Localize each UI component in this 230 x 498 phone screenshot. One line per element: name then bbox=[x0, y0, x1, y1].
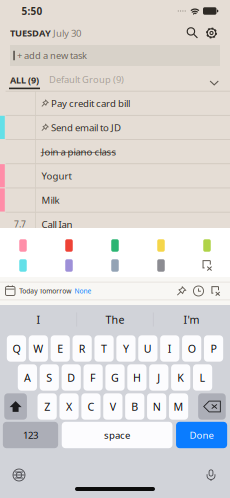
button[interactable]: O bbox=[182, 335, 201, 362]
staticText: Y bbox=[123, 341, 129, 356]
button[interactable]: I bbox=[1, 305, 76, 334]
button[interactable]: H bbox=[127, 364, 146, 391]
staticText: W bbox=[33, 341, 43, 356]
button[interactable]: Settings bbox=[202, 23, 221, 42]
staticText: O bbox=[188, 341, 196, 356]
button[interactable]: S bbox=[40, 364, 59, 391]
staticText: D bbox=[67, 370, 75, 385]
staticText: Default Group (9) bbox=[49, 73, 124, 86]
button[interactable]: Set reminder bbox=[190, 282, 207, 299]
button[interactable]: Next keyboard bbox=[9, 465, 29, 485]
button[interactable]: ALL (9) bbox=[0, 74, 40, 89]
button[interactable]: R bbox=[73, 335, 92, 362]
staticText: 5:50 bbox=[21, 4, 42, 18]
button[interactable]: Colour option bbox=[138, 237, 184, 254]
staticText: K bbox=[177, 370, 184, 385]
staticText: Pay credit card bill bbox=[51, 97, 130, 110]
button[interactable]: Colour option bbox=[184, 237, 230, 254]
staticText: A bbox=[24, 370, 31, 385]
staticText: P bbox=[211, 341, 217, 356]
staticText: I bbox=[168, 341, 172, 356]
button[interactable]: The bbox=[77, 305, 153, 334]
button[interactable]: Y bbox=[116, 335, 136, 362]
button[interactable]: Z bbox=[38, 393, 57, 420]
staticText: X bbox=[66, 399, 72, 414]
staticText: TUESDAY bbox=[10, 27, 51, 39]
staticText: F bbox=[90, 370, 96, 385]
staticText: R bbox=[79, 341, 86, 356]
staticText: 7.7 bbox=[14, 219, 26, 230]
button[interactable]: Dictate bbox=[201, 465, 221, 485]
button[interactable]: Colour option bbox=[0, 237, 46, 254]
staticText: C bbox=[87, 399, 94, 414]
button[interactable]: Expand groups bbox=[209, 80, 230, 89]
staticText: Join a piano class bbox=[41, 145, 116, 158]
staticText: None bbox=[75, 287, 92, 295]
button[interactable]: K bbox=[171, 364, 190, 391]
button[interactable]: T bbox=[94, 335, 114, 362]
button[interactable]: N bbox=[147, 393, 166, 420]
button[interactable]: Done bbox=[176, 422, 227, 448]
button[interactable]: Clear tag bbox=[207, 282, 224, 299]
staticText: Tomorrow bbox=[39, 287, 71, 295]
staticText: S bbox=[46, 370, 52, 385]
button[interactable]: W bbox=[29, 335, 48, 362]
staticText: L bbox=[200, 370, 206, 385]
staticText: Today bbox=[19, 287, 37, 295]
button[interactable]: Delete bbox=[198, 393, 226, 420]
staticText: I bbox=[36, 312, 40, 327]
staticText: The bbox=[105, 312, 124, 327]
staticText: ALL (9) bbox=[10, 74, 39, 86]
button[interactable]: U bbox=[138, 335, 157, 362]
staticText: G bbox=[111, 370, 119, 385]
button[interactable]: Shift bbox=[4, 393, 27, 420]
button[interactable]: A bbox=[18, 364, 37, 391]
button[interactable]: Colour option bbox=[138, 257, 184, 274]
staticText: Send email to JD bbox=[51, 121, 121, 134]
button[interactable]: Colour option bbox=[46, 257, 92, 274]
button[interactable]: E bbox=[51, 335, 70, 362]
button[interactable]: Search bbox=[183, 23, 202, 42]
staticText: T bbox=[101, 341, 107, 356]
button[interactable]: P bbox=[204, 335, 223, 362]
button[interactable]: Colour option bbox=[92, 237, 138, 254]
staticText: + add a new task bbox=[17, 49, 87, 62]
button[interactable]: I'm bbox=[154, 305, 229, 334]
staticText: N bbox=[153, 399, 161, 414]
button[interactable]: J bbox=[149, 364, 168, 391]
button[interactable]: space bbox=[62, 422, 172, 448]
staticText: Milk bbox=[41, 194, 59, 206]
staticText: M bbox=[174, 399, 184, 414]
staticText: Call Ian bbox=[41, 218, 72, 231]
button[interactable]: Colour option bbox=[0, 257, 46, 274]
staticText: Yogurt bbox=[41, 169, 71, 182]
staticText: space bbox=[104, 429, 130, 441]
button[interactable]: Clear colour bbox=[184, 257, 230, 274]
button[interactable]: Default Group (9) bbox=[40, 73, 124, 89]
button[interactable]: 123 bbox=[3, 422, 58, 448]
staticText: I'm bbox=[183, 312, 199, 327]
staticText: H bbox=[133, 370, 141, 385]
staticText: U bbox=[144, 341, 152, 356]
button[interactable]: Colour option bbox=[46, 237, 92, 254]
button[interactable]: Pin task bbox=[173, 282, 190, 299]
button[interactable]: B bbox=[125, 393, 144, 420]
button[interactable]: C bbox=[81, 393, 101, 420]
staticText: Q bbox=[12, 341, 20, 356]
staticText: V bbox=[110, 399, 116, 414]
staticText: B bbox=[131, 399, 138, 414]
button[interactable]: V bbox=[103, 393, 122, 420]
button[interactable]: G bbox=[105, 364, 125, 391]
button[interactable]: I bbox=[160, 335, 179, 362]
staticText: July 30 bbox=[51, 27, 81, 39]
button[interactable]: Colour option bbox=[92, 257, 138, 274]
button[interactable]: F bbox=[83, 364, 103, 391]
staticText: E bbox=[57, 341, 63, 356]
button[interactable]: Q bbox=[7, 335, 26, 362]
button[interactable]: M bbox=[169, 393, 188, 420]
staticText: J bbox=[157, 370, 160, 385]
button[interactable]: L bbox=[193, 364, 212, 391]
button[interactable]: D bbox=[62, 364, 81, 391]
staticText: Z bbox=[44, 399, 50, 414]
button[interactable]: X bbox=[59, 393, 79, 420]
